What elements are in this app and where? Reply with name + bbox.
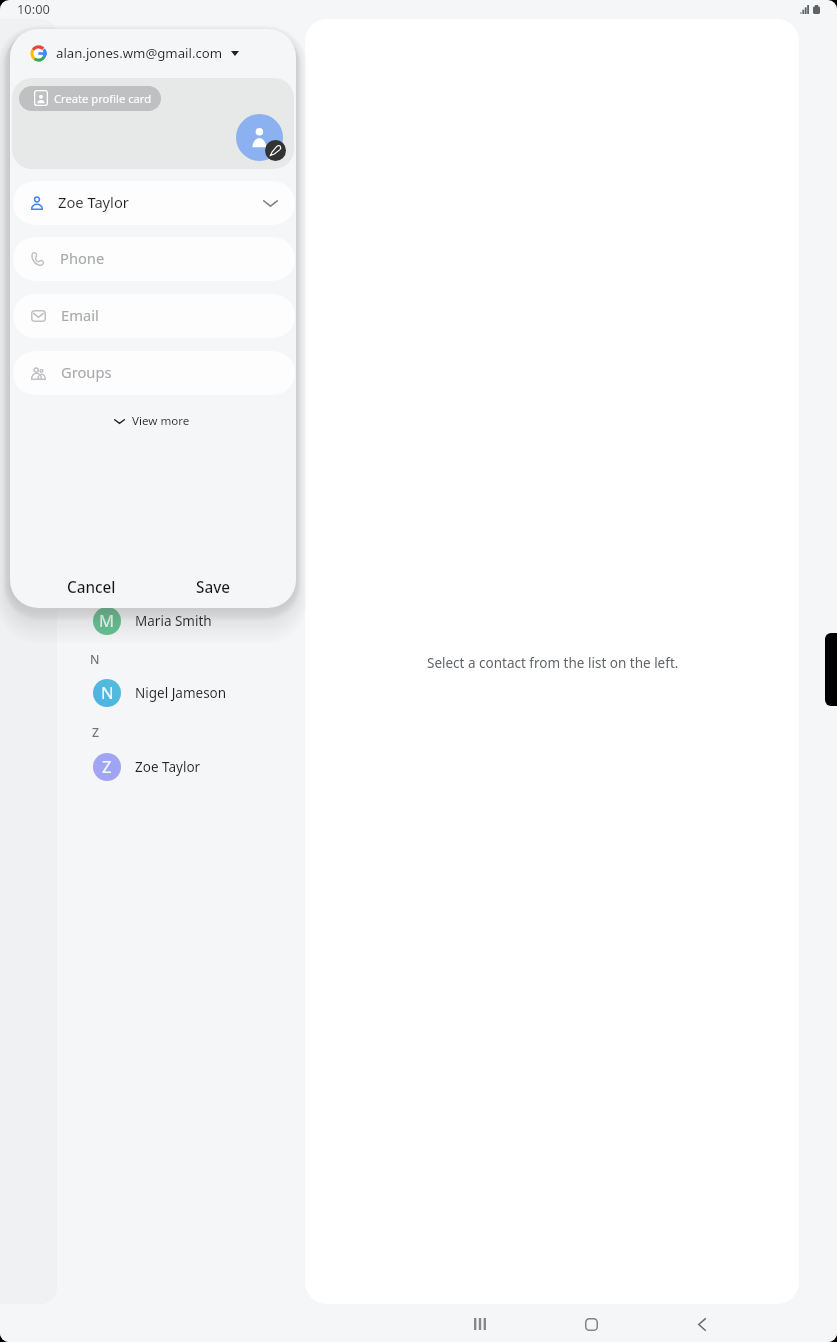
button[interactable]: Cancel [61, 565, 121, 608]
button[interactable]: Edit photo [265, 140, 286, 161]
button[interactable]: View more [109, 407, 194, 435]
staticText: Groups [61, 362, 112, 382]
button[interactable]: Zoe Taylor [13, 181, 295, 225]
staticText: Zoe Taylor [58, 192, 129, 212]
button[interactable]: Groups [13, 351, 295, 395]
staticText: Phone [60, 248, 105, 268]
button[interactable]: Back [680, 1305, 724, 1342]
staticText: M [99, 609, 115, 632]
button[interactable]: N [57, 671, 305, 715]
button[interactable]: Phone [13, 237, 295, 281]
button[interactable]: Create profile card [19, 86, 161, 111]
button[interactable]: Save [189, 565, 238, 608]
button[interactable]: Home [569, 1305, 613, 1342]
button[interactable]: Email [13, 294, 295, 338]
button[interactable]: alan.jones.wm@gmail.com [10, 29, 296, 77]
button[interactable]: Recents [458, 1305, 502, 1342]
staticText: Create profile card [54, 91, 152, 106]
staticText: Z [92, 724, 99, 741]
staticText: N [101, 681, 114, 704]
staticText: View more [132, 413, 190, 429]
staticText: Nigel Jameson [135, 684, 227, 702]
staticText: 10:00 [17, 0, 50, 18]
staticText: Maria Smith [135, 612, 212, 630]
staticText: Zoe Taylor [135, 758, 201, 776]
button[interactable]: M [57, 599, 305, 643]
button[interactable]: Change photo [236, 114, 283, 161]
button[interactable]: Z [57, 745, 305, 789]
staticText: Email [61, 305, 99, 325]
staticText: N [90, 651, 100, 668]
staticText: Select a contact from the list on the le… [427, 654, 679, 672]
staticText: Save [196, 577, 231, 598]
staticText: Z [102, 755, 112, 778]
staticText: Cancel [67, 577, 116, 598]
staticText: alan.jones.wm@gmail.com [56, 44, 223, 62]
